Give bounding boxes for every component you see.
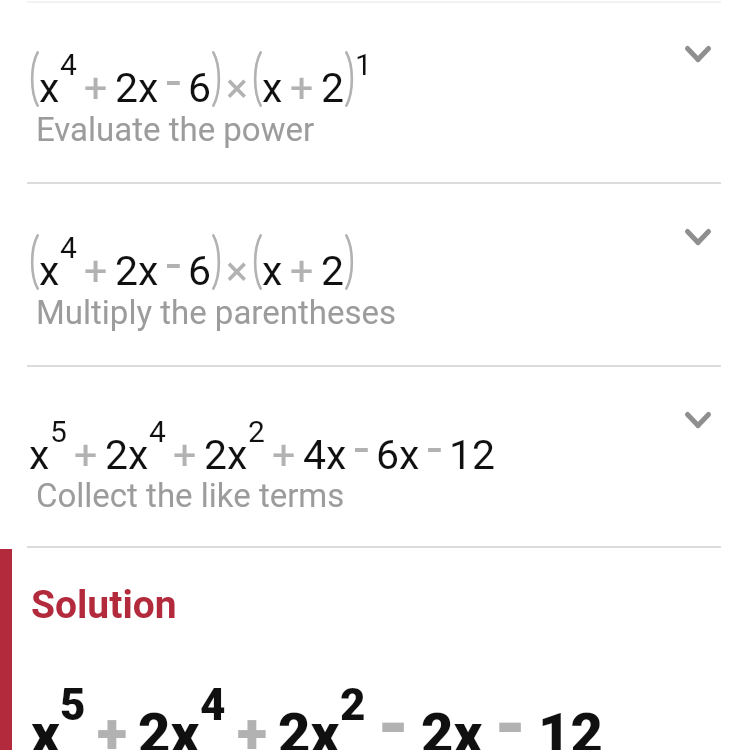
staticText: + xyxy=(173,431,197,479)
staticText: 12 xyxy=(449,431,496,479)
staticText: × xyxy=(226,247,248,295)
staticText: Collect the like terms xyxy=(36,476,345,515)
staticText: x xyxy=(29,431,50,479)
staticText: 2 xyxy=(248,414,265,449)
staticText: 2x xyxy=(421,701,483,750)
staticText: 2 xyxy=(321,247,345,295)
staticText: - xyxy=(427,417,442,479)
button[interactable]: Expand step xyxy=(674,396,722,444)
staticText: 2x xyxy=(138,701,200,750)
button[interactable]: x xyxy=(0,366,750,549)
staticText: 6x xyxy=(376,431,420,479)
staticText: + xyxy=(272,431,296,479)
staticText: 5 xyxy=(50,414,67,449)
staticText: - xyxy=(166,233,181,295)
staticText: + xyxy=(290,247,314,295)
staticText: Evaluate the power xyxy=(36,110,315,149)
button[interactable]: x xyxy=(0,0,750,183)
button[interactable]: Expand step xyxy=(674,30,722,78)
staticText: - xyxy=(166,50,181,112)
staticText: 2x xyxy=(278,701,340,750)
staticText: + xyxy=(84,64,108,112)
staticText: - xyxy=(377,682,410,750)
staticText: + xyxy=(97,701,127,750)
staticText: + xyxy=(290,64,314,112)
staticText: 6 xyxy=(188,247,212,295)
staticText: - xyxy=(354,417,369,479)
button[interactable]: Expand step xyxy=(674,213,722,261)
staticText: x xyxy=(31,701,60,750)
staticText: 2 xyxy=(321,64,345,112)
staticText: 4 xyxy=(200,679,226,731)
staticText: 2x xyxy=(204,431,248,479)
staticText: + xyxy=(237,701,267,750)
staticText: 4 xyxy=(60,47,77,82)
staticText: 2x xyxy=(105,431,149,479)
staticText: x xyxy=(39,64,60,112)
staticText: x xyxy=(39,247,60,295)
staticText: 2x xyxy=(115,64,159,112)
staticText: 6 xyxy=(188,64,212,112)
staticText: x xyxy=(262,247,283,295)
staticText: 4x xyxy=(303,431,347,479)
staticText: Solution xyxy=(31,582,177,628)
staticText: - xyxy=(494,682,527,750)
staticText: 12 xyxy=(538,701,603,750)
button[interactable]: x xyxy=(0,183,750,366)
staticText: × xyxy=(226,64,248,112)
staticText: 5 xyxy=(60,679,86,731)
staticText: + xyxy=(84,247,108,295)
staticText: + xyxy=(74,431,98,479)
staticText: x xyxy=(262,64,283,112)
staticText: 2 xyxy=(340,679,366,731)
staticText: 4 xyxy=(149,414,166,449)
staticText: 2x xyxy=(115,247,159,295)
staticText: 4 xyxy=(60,230,77,265)
staticText: 1 xyxy=(355,47,372,82)
staticText: Multiply the parentheses xyxy=(36,293,396,332)
